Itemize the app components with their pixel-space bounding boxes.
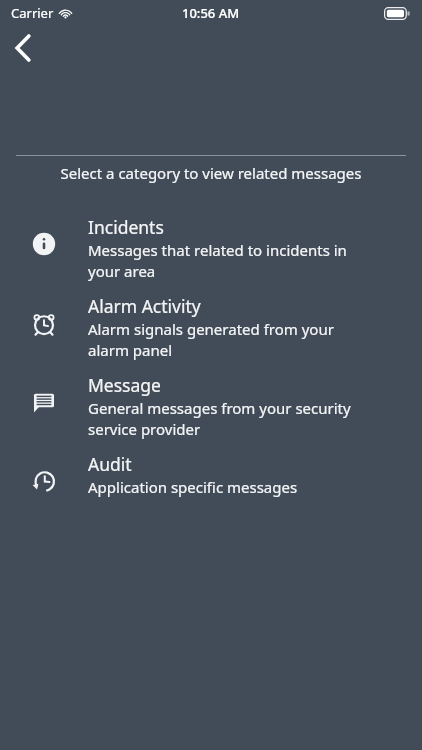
button[interactable]: Alarm Activity: [0, 288, 422, 367]
staticText: General messages from your security serv…: [88, 398, 352, 440]
staticText: Carrier: [11, 4, 54, 22]
staticText: Select a category to view related messag…: [0, 163, 422, 183]
button[interactable]: Message: [0, 367, 422, 446]
staticText: Message: [88, 373, 161, 397]
button[interactable]: Back: [0, 26, 46, 70]
staticText: Incidents: [88, 215, 164, 239]
staticText: 10:56 AM: [182, 4, 240, 22]
staticText: Alarm Activity: [88, 294, 201, 318]
staticText: Alarm signals generated from your alarm …: [88, 319, 352, 361]
staticText: Application specific messages: [88, 477, 298, 497]
button[interactable]: Incidents: [0, 209, 422, 288]
staticText: Audit: [88, 452, 132, 476]
staticText: Messages that related to incidents in yo…: [88, 240, 352, 282]
button[interactable]: Audit: [0, 446, 422, 503]
